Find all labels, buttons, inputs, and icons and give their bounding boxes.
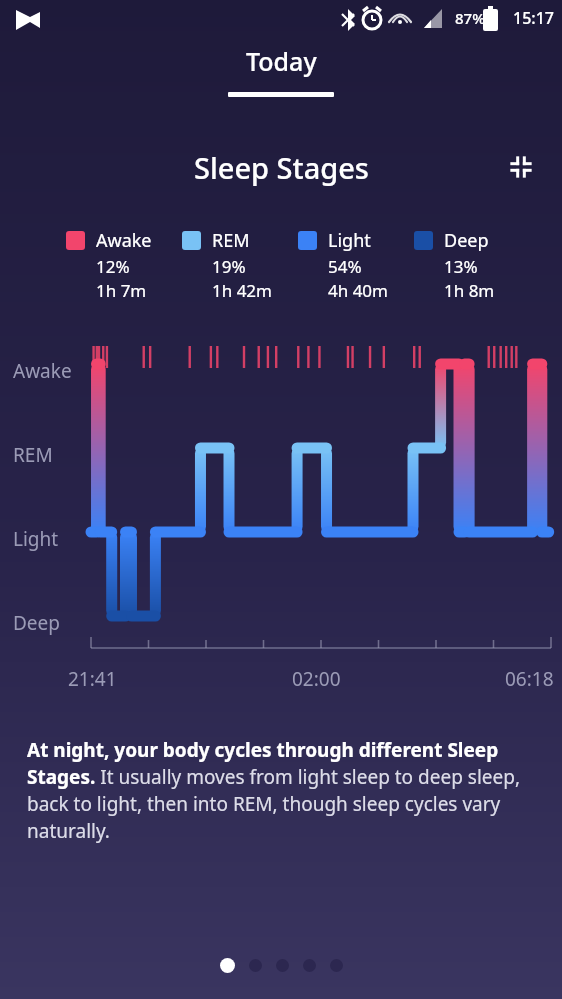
staticText: Today [246,44,317,78]
button[interactable]: Deep [414,228,495,302]
staticText: Deep [444,228,489,253]
staticText: 13% [444,255,478,278]
staticText: 1h 8m [444,279,495,302]
staticText: 87% [455,8,485,28]
button[interactable] [330,959,343,972]
staticText: 19% [212,255,246,278]
staticText: 12% [96,255,130,278]
button[interactable]: Today [228,44,334,97]
button[interactable]: Awake [66,228,152,302]
staticText: At night, your body cycles through diffe… [27,737,532,844]
button[interactable] [220,958,235,973]
staticText: 15:17 [513,7,554,29]
button[interactable] [303,959,316,972]
staticText: REM [212,228,250,253]
button[interactable] [276,959,289,972]
staticText: 02:00 [292,666,341,692]
staticText: Awake [13,358,72,384]
staticText: 4h 40m [328,279,388,302]
button[interactable]: Light [298,228,388,302]
staticText: Light [13,526,59,552]
button[interactable]: Collapse [500,146,542,188]
staticText: 1h 42m [212,279,272,302]
staticText: Sleep Stages [194,148,369,187]
staticText: Light [328,228,371,253]
button[interactable] [249,959,262,972]
staticText: 06:18 [505,666,554,692]
staticText: 21:41 [68,666,117,692]
staticText: REM [13,442,53,468]
button[interactable]: REM [182,228,272,302]
staticText: Awake [96,228,152,253]
staticText: 1h 7m [96,279,147,302]
staticText: Deep [13,610,60,636]
staticText: 54% [328,255,362,278]
